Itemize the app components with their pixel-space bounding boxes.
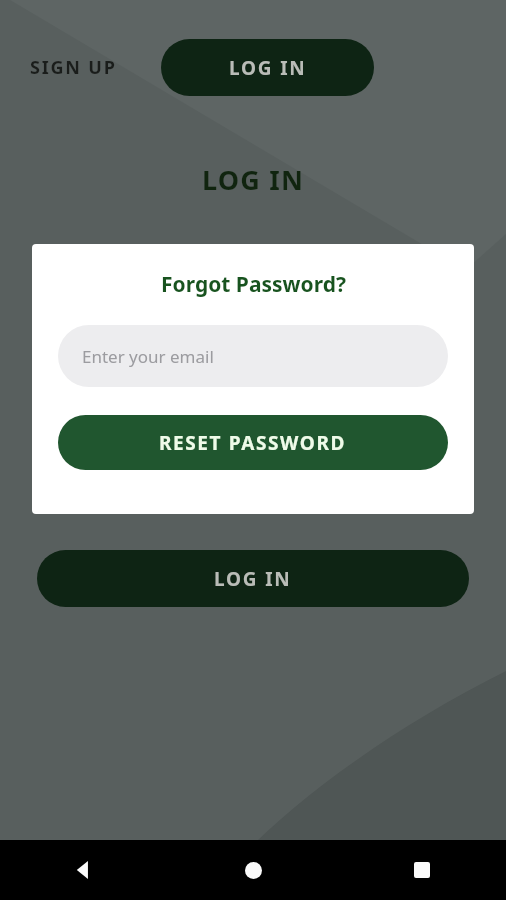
button[interactable]: Home [231, 848, 275, 892]
button[interactable]: SIGN UP [8, 41, 139, 94]
staticText: Enter your email [82, 345, 214, 368]
button[interactable]: LOG IN [37, 550, 469, 607]
staticText: LOG IN [214, 566, 292, 592]
button[interactable]: Recent apps [400, 848, 444, 892]
button[interactable]: Enter your email [58, 325, 448, 387]
staticText: Forgot Password? [161, 270, 346, 299]
staticText: LOG IN [229, 55, 307, 81]
staticText: LOG IN [202, 161, 305, 198]
button[interactable]: Back [62, 848, 106, 892]
staticText: RESET PASSWORD [159, 430, 347, 456]
button[interactable]: RESET PASSWORD [58, 415, 448, 470]
staticText: SIGN UP [30, 55, 117, 80]
button[interactable]: LOG IN [161, 39, 374, 96]
